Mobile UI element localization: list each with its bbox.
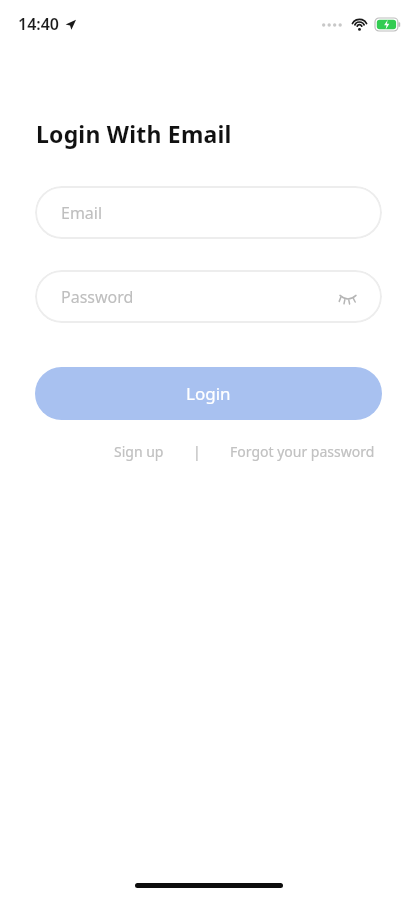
button[interactable]: Login: [35, 367, 382, 420]
staticText: Login With Email: [36, 118, 232, 149]
button[interactable]: Email: [35, 186, 382, 239]
button[interactable]: Show password: [334, 283, 362, 311]
staticText: Login: [186, 382, 231, 405]
button[interactable]: Sign up: [110, 438, 168, 465]
staticText: |: [193, 442, 201, 461]
button[interactable]: Forgot your password: [226, 438, 379, 465]
staticText: Sign up: [114, 442, 164, 461]
staticText: Email: [61, 202, 103, 224]
staticText: Password: [61, 286, 134, 308]
staticText: 14:40: [18, 13, 60, 35]
button[interactable]: Password: [35, 270, 382, 323]
staticText: Forgot your password: [230, 442, 375, 461]
